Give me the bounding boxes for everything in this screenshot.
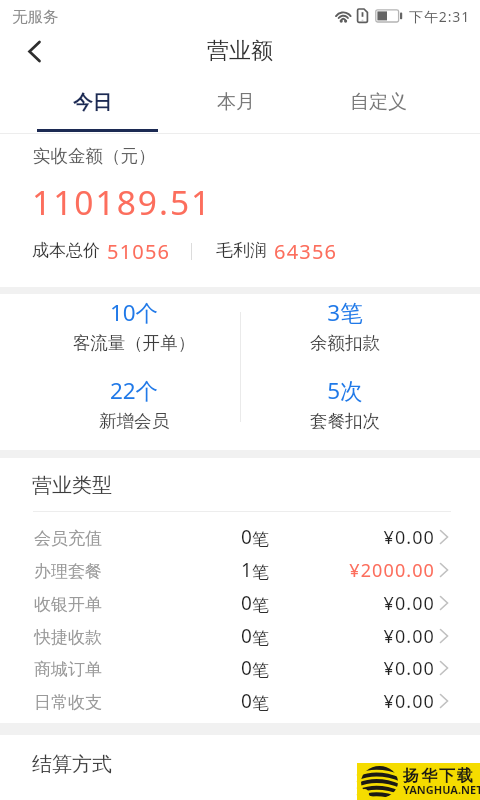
button[interactable]: Back: [10, 29, 52, 71]
staticText: ¥0.00: [333, 525, 435, 550]
staticText: 笔: [252, 628, 269, 649]
staticText: 营业类型: [32, 473, 112, 498]
staticText: 快捷收款: [34, 627, 102, 648]
button[interactable]: 22个: [29, 375, 239, 431]
button[interactable]: 5次: [240, 375, 450, 431]
staticText: ¥2000.00: [333, 558, 435, 583]
staticText: 0: [241, 524, 252, 550]
staticText: 110189.51: [32, 179, 213, 225]
staticText: 毛利润: [216, 240, 267, 261]
staticText: 0: [241, 688, 252, 714]
staticText: 今日: [73, 90, 112, 115]
staticText: 日常收支: [34, 692, 102, 713]
staticText: 结算方式: [32, 752, 112, 777]
staticText: ¥0.00: [333, 689, 435, 714]
staticText: 商城订单: [34, 659, 102, 680]
staticText: 实收金额（元）: [33, 145, 156, 167]
staticText: 3笔: [240, 297, 450, 328]
staticText: 扬华下载: [402, 766, 474, 786]
staticText: 下午2:31: [409, 7, 471, 26]
button[interactable]: 自定义: [307, 76, 450, 126]
staticText: 0: [241, 590, 252, 616]
staticText: 本月: [217, 90, 255, 114]
staticText: YANGHUA.NET: [403, 782, 480, 797]
staticText: 成本总价: [32, 240, 100, 261]
button[interactable]: 商城订单: [0, 652, 480, 685]
button[interactable]: 本月: [164, 76, 307, 126]
staticText: 收银开单: [34, 594, 102, 615]
staticText: 自定义: [350, 90, 407, 114]
staticText: 1: [241, 557, 252, 583]
staticText: 64356: [274, 238, 338, 262]
staticText: 0: [241, 655, 252, 681]
staticText: 51056: [107, 238, 171, 262]
button[interactable]: 日常收支: [0, 685, 480, 718]
button[interactable]: 3笔: [240, 297, 450, 353]
staticText: 客流量（开单）: [29, 332, 239, 354]
staticText: 余额扣款: [240, 332, 450, 354]
staticText: ¥0.00: [333, 591, 435, 616]
staticText: 笔: [252, 660, 269, 681]
staticText: 新增会员: [29, 410, 239, 432]
staticText: 办理套餐: [34, 561, 102, 582]
staticText: ¥0.00: [333, 624, 435, 649]
staticText: 0: [241, 623, 252, 649]
button[interactable]: 快捷收款: [0, 620, 480, 653]
button[interactable]: 会员充值: [0, 521, 480, 554]
button[interactable]: 今日: [21, 76, 164, 126]
staticText: 22个: [29, 375, 239, 406]
staticText: 营业额: [207, 37, 273, 65]
staticText: 套餐扣次: [240, 410, 450, 432]
button[interactable]: 收银开单: [0, 587, 480, 620]
staticText: 笔: [252, 693, 269, 714]
staticText: 笔: [252, 595, 269, 616]
button[interactable]: 办理套餐: [0, 554, 480, 587]
staticText: 10个: [29, 297, 239, 328]
staticText: 笔: [252, 562, 269, 583]
button[interactable]: 10个: [29, 297, 239, 353]
staticText: ¥0.00: [333, 656, 435, 681]
button[interactable]: 结算方式: [0, 735, 480, 800]
staticText: 会员充值: [34, 528, 102, 549]
staticText: 笔: [252, 529, 269, 550]
staticText: 5次: [240, 375, 450, 406]
staticText: 无服务: [12, 7, 59, 27]
